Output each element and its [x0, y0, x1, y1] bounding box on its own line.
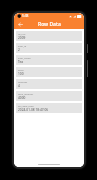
staticText: 5:38 [22, 14, 29, 18]
staticText: 2009 [18, 36, 26, 40]
staticText: quantity [18, 80, 28, 83]
button[interactable]: bill_date_time [16, 103, 82, 113]
staticText: Row Data [38, 21, 61, 28]
staticText: Tea [18, 60, 24, 64]
staticText: price [18, 68, 24, 71]
staticText: bill_date_time [18, 104, 34, 107]
staticText: 4000 [18, 96, 26, 100]
staticText: ID_NO [18, 32, 26, 35]
button[interactable]: total_amount [16, 91, 82, 101]
button[interactable]: item_id [16, 43, 82, 53]
staticText: 4 [18, 84, 20, 88]
staticText: 100 [18, 72, 24, 76]
button[interactable]: item_name [16, 55, 82, 65]
staticText: total_amount [18, 92, 34, 95]
button[interactable]: price [16, 67, 82, 77]
button[interactable]: Back [16, 20, 25, 29]
button[interactable]: quantity [16, 79, 82, 89]
staticText: item_name [18, 56, 31, 59]
staticText: item_id [18, 44, 27, 47]
button[interactable]: ID_NO [16, 31, 82, 41]
staticText: 2024-01-08 18:47:06 [18, 108, 49, 112]
staticText: 2 [18, 48, 20, 52]
